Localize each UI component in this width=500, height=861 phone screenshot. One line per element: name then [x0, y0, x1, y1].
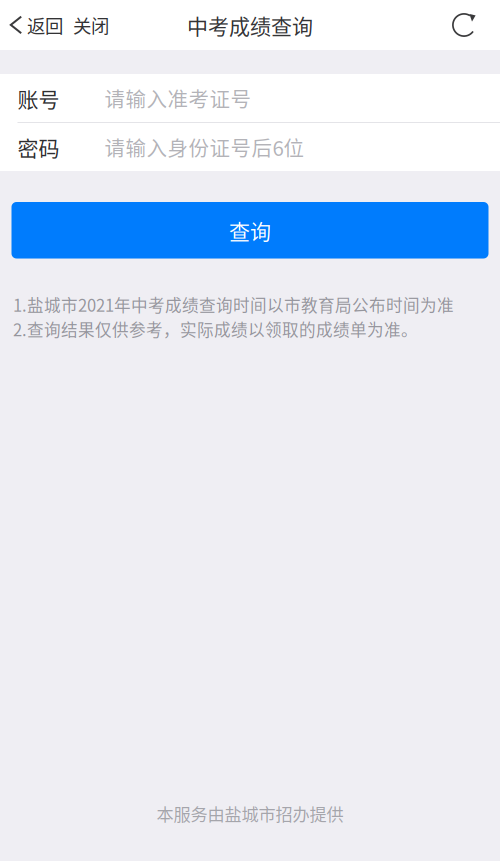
staticText: 请输入身份证号后6位: [104, 132, 304, 162]
staticText: 账号: [17, 83, 59, 113]
button[interactable]: 返回: [0, 0, 67, 50]
button[interactable]: 刷新: [438, 0, 500, 50]
staticText: 本服务由盐城市招办提供: [156, 801, 343, 826]
staticText: 查询: [229, 215, 271, 245]
staticText: 请输入准考证号: [104, 83, 251, 113]
staticText: 中考成绩查询: [187, 10, 313, 40]
staticText: 1.盐城市2021年中考成绩查询时间以市教育局公布时间为准: [13, 292, 454, 316]
staticText: 关闭: [73, 12, 109, 38]
button[interactable]: 密码: [0, 123, 500, 171]
button[interactable]: 查询: [11, 202, 488, 258]
button[interactable]: 关闭: [67, 0, 115, 50]
button[interactable]: 账号: [0, 74, 500, 122]
staticText: 2.查询结果仅供参考，实际成绩以领取的成绩单为准。: [13, 317, 418, 341]
staticText: 返回: [27, 12, 63, 38]
staticText: 密码: [17, 132, 59, 162]
